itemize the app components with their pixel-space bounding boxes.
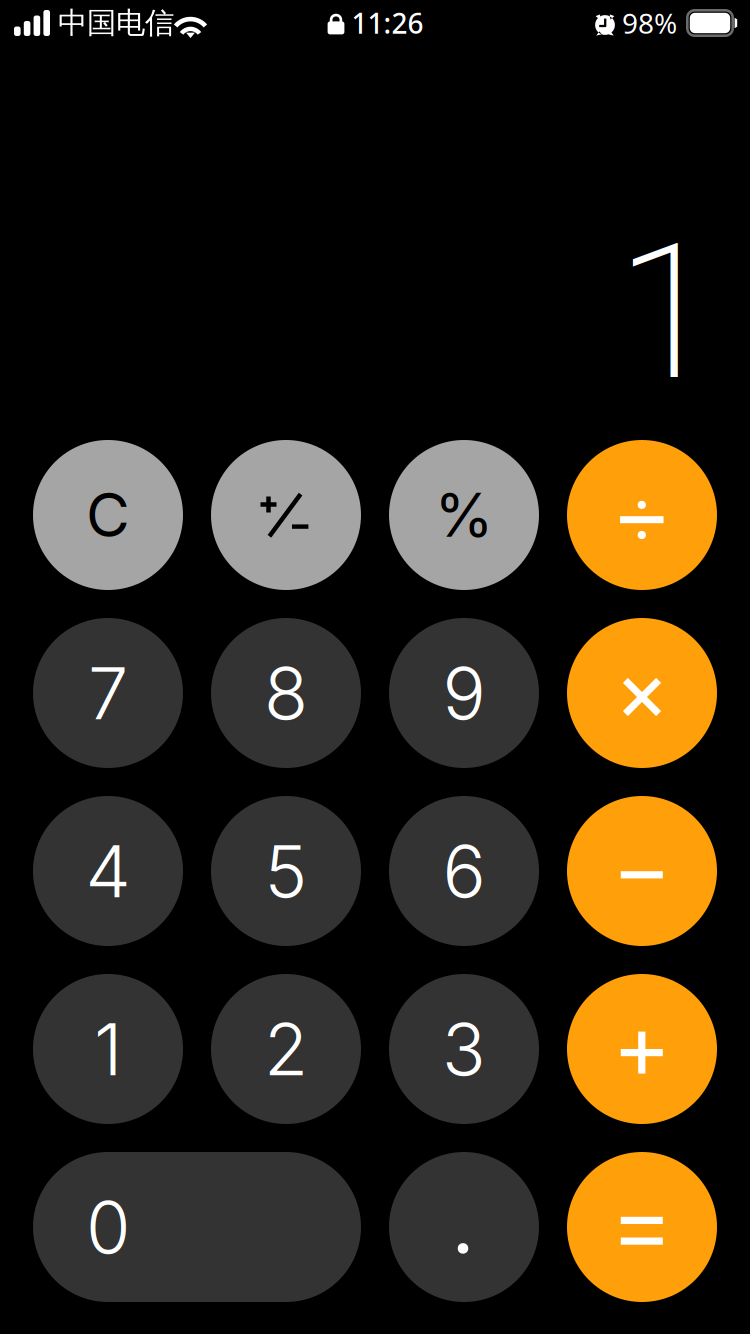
staticText: 2 [264, 1005, 308, 1092]
button[interactable]: Divide [567, 440, 717, 590]
button[interactable]: Plus minus [211, 440, 361, 590]
staticText: 98% [622, 4, 677, 42]
button[interactable]: 4 [33, 796, 183, 946]
button[interactable]: 1 [33, 974, 183, 1124]
staticText: 9 [442, 649, 485, 736]
button[interactable]: 0 [33, 1152, 361, 1302]
button[interactable]: Percent [389, 440, 539, 590]
staticText: 3 [442, 1005, 486, 1092]
button[interactable]: 6 [389, 796, 539, 946]
button[interactable]: Multiply [567, 618, 717, 768]
staticText: C [86, 479, 130, 551]
button[interactable]: 2 [211, 974, 361, 1124]
button[interactable]: Plus [567, 974, 717, 1124]
button[interactable]: Clear [33, 440, 183, 590]
staticText: 1 [94, 1005, 122, 1092]
staticText: % [434, 479, 493, 551]
staticText: 中国电信 [58, 5, 174, 41]
button[interactable]: Equals [567, 1152, 717, 1302]
button[interactable]: Minus [567, 796, 717, 946]
button[interactable]: 9 [389, 618, 539, 768]
staticText: 11:26 [351, 4, 423, 42]
button[interactable]: 7 [33, 618, 183, 768]
staticText: 6 [442, 827, 485, 914]
staticText: 5 [264, 827, 307, 914]
button[interactable]: 3 [389, 974, 539, 1124]
button[interactable]: Decimal point [389, 1152, 539, 1302]
button[interactable]: 8 [211, 618, 361, 768]
staticText: 8 [264, 649, 308, 736]
staticText: 0 [86, 1183, 130, 1270]
staticText: 1 [616, 203, 719, 423]
button[interactable]: 5 [211, 796, 361, 946]
staticText: 4 [85, 827, 130, 914]
staticText: 7 [88, 649, 128, 736]
